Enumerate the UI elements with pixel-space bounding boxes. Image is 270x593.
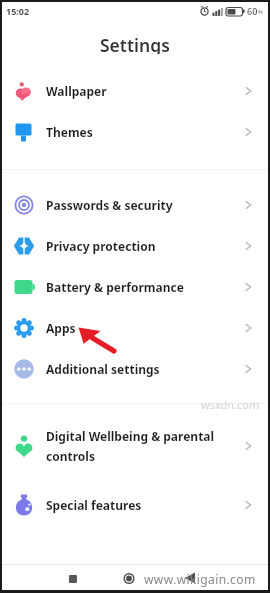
button[interactable]: Passwords & security bbox=[2, 184, 268, 225]
button[interactable]: Battery & performance bbox=[2, 266, 268, 307]
staticText: Additional settings bbox=[46, 361, 160, 377]
staticText: Special features bbox=[46, 497, 142, 513]
staticText: Themes bbox=[46, 124, 93, 140]
staticText: wsxdn.com bbox=[201, 397, 260, 412]
staticText: Battery & performance bbox=[46, 279, 184, 295]
button[interactable] bbox=[184, 572, 196, 584]
button[interactable] bbox=[123, 572, 135, 584]
staticText: controls bbox=[46, 448, 95, 464]
staticText: 60 bbox=[247, 5, 258, 17]
staticText: Settings bbox=[100, 33, 170, 54]
staticText: Digital Wellbeing & parental bbox=[46, 428, 215, 444]
staticText: Passwords & security bbox=[46, 197, 173, 213]
staticText: Privacy protection bbox=[46, 238, 156, 254]
button[interactable]: Themes bbox=[2, 111, 268, 152]
button[interactable]: Special features bbox=[2, 484, 268, 525]
button[interactable] bbox=[69, 575, 77, 583]
staticText: www.wikigain.com bbox=[144, 571, 256, 587]
button[interactable]: Additional settings bbox=[2, 348, 268, 389]
button[interactable]: Privacy protection bbox=[2, 225, 268, 266]
button[interactable]: Digital Wellbeing & parental bbox=[2, 415, 268, 476]
button[interactable]: Wallpaper bbox=[2, 70, 268, 111]
staticText: Wallpaper bbox=[46, 83, 107, 99]
staticText: % bbox=[258, 8, 263, 16]
staticText: 15:02 bbox=[6, 5, 30, 17]
button[interactable]: Apps bbox=[2, 307, 268, 348]
staticText: Apps bbox=[46, 320, 76, 336]
